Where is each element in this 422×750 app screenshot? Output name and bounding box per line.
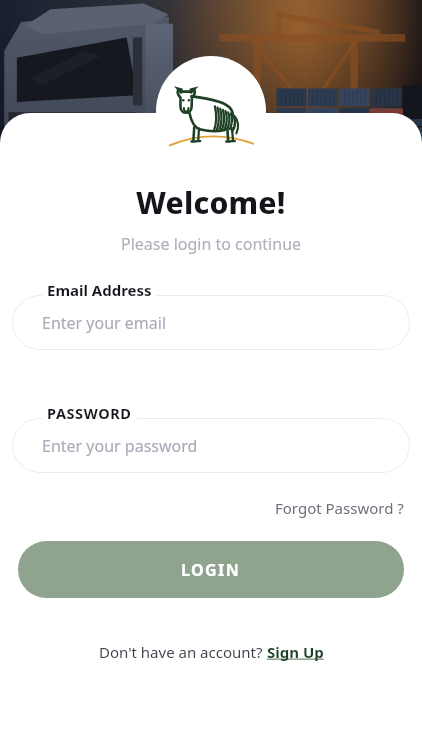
staticText: Forgot Password ? xyxy=(275,498,404,518)
button[interactable]: Enter your password xyxy=(12,418,410,473)
staticText: Welcome! xyxy=(136,182,286,223)
staticText: Sign Up xyxy=(267,642,324,662)
staticText: PASSWORD xyxy=(47,403,132,423)
staticText: LOGIN xyxy=(181,559,241,581)
button[interactable]: Forgot Password ? xyxy=(273,495,406,521)
staticText: Enter your password xyxy=(42,435,198,457)
staticText: Please login to continue xyxy=(121,233,302,255)
staticText: Email Address xyxy=(47,280,152,300)
staticText: Don't have an account? xyxy=(99,642,267,662)
staticText: Enter your email xyxy=(42,312,167,334)
button[interactable]: Enter your email xyxy=(12,295,410,350)
button[interactable]: Sign Up xyxy=(267,642,324,662)
button[interactable]: LOGIN xyxy=(18,541,404,598)
